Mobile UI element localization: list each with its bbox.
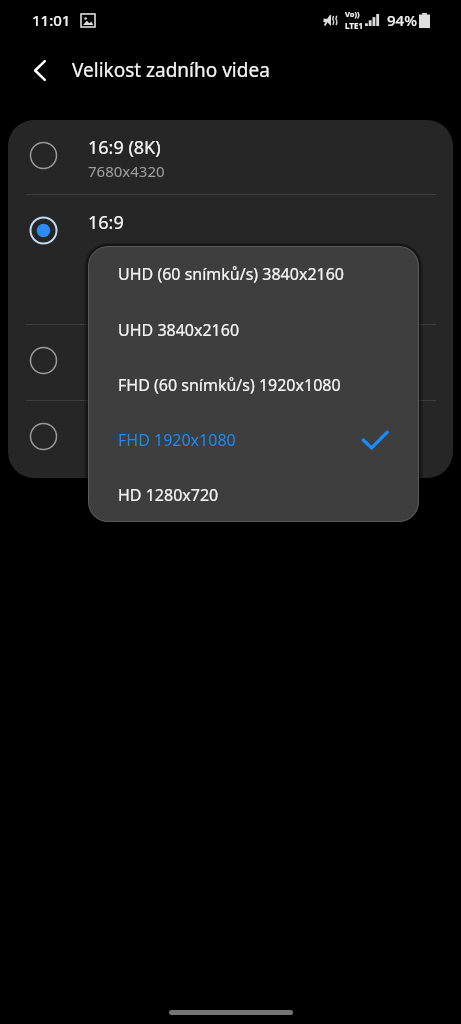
button[interactable]: 16:9 (8K) [8, 120, 453, 194]
staticText: 7680x4320 [88, 161, 165, 181]
staticText: 16:9 (8K) [88, 135, 161, 160]
staticText: 16:9 [88, 210, 124, 235]
staticText: UHD (60 snímků/s) 3840x2160 [118, 263, 344, 285]
staticText: HD 1280x720 [118, 484, 219, 506]
button[interactable]: 16:9 [8, 195, 453, 324]
staticText: 3264x2448 [88, 366, 165, 386]
button[interactable]: 4:3 [8, 325, 453, 400]
staticText: Vo)) [345, 9, 360, 19]
staticText: 1:1 [88, 416, 114, 441]
button[interactable]: HD 1280x720 [88, 467, 419, 522]
button[interactable]: UHD (60 snímků/s) 3840x2160 [88, 246, 419, 302]
staticText: FHD (60 snímků/s) 1920x1080 [118, 374, 341, 396]
button[interactable]: 1:1 [8, 401, 453, 478]
staticText: 2992x2992 [88, 442, 165, 462]
button[interactable]: UHD 3840x2160 [88, 302, 419, 357]
button[interactable]: FHD (60 snímků/s) 1920x1080 [88, 357, 419, 412]
staticText: 94% [387, 10, 417, 30]
staticText: UHD 3840x2160 [118, 319, 240, 341]
staticText: LTE1 [345, 20, 363, 31]
staticText: FHD 1920x1080 [118, 429, 236, 451]
staticText: Velikost zadního videa [72, 57, 270, 83]
button[interactable]: Back [18, 48, 62, 92]
button[interactable]: FHD 1920x1080 [88, 412, 419, 467]
staticText: 4:3 [88, 340, 114, 365]
staticText: 11:01 [32, 10, 71, 30]
